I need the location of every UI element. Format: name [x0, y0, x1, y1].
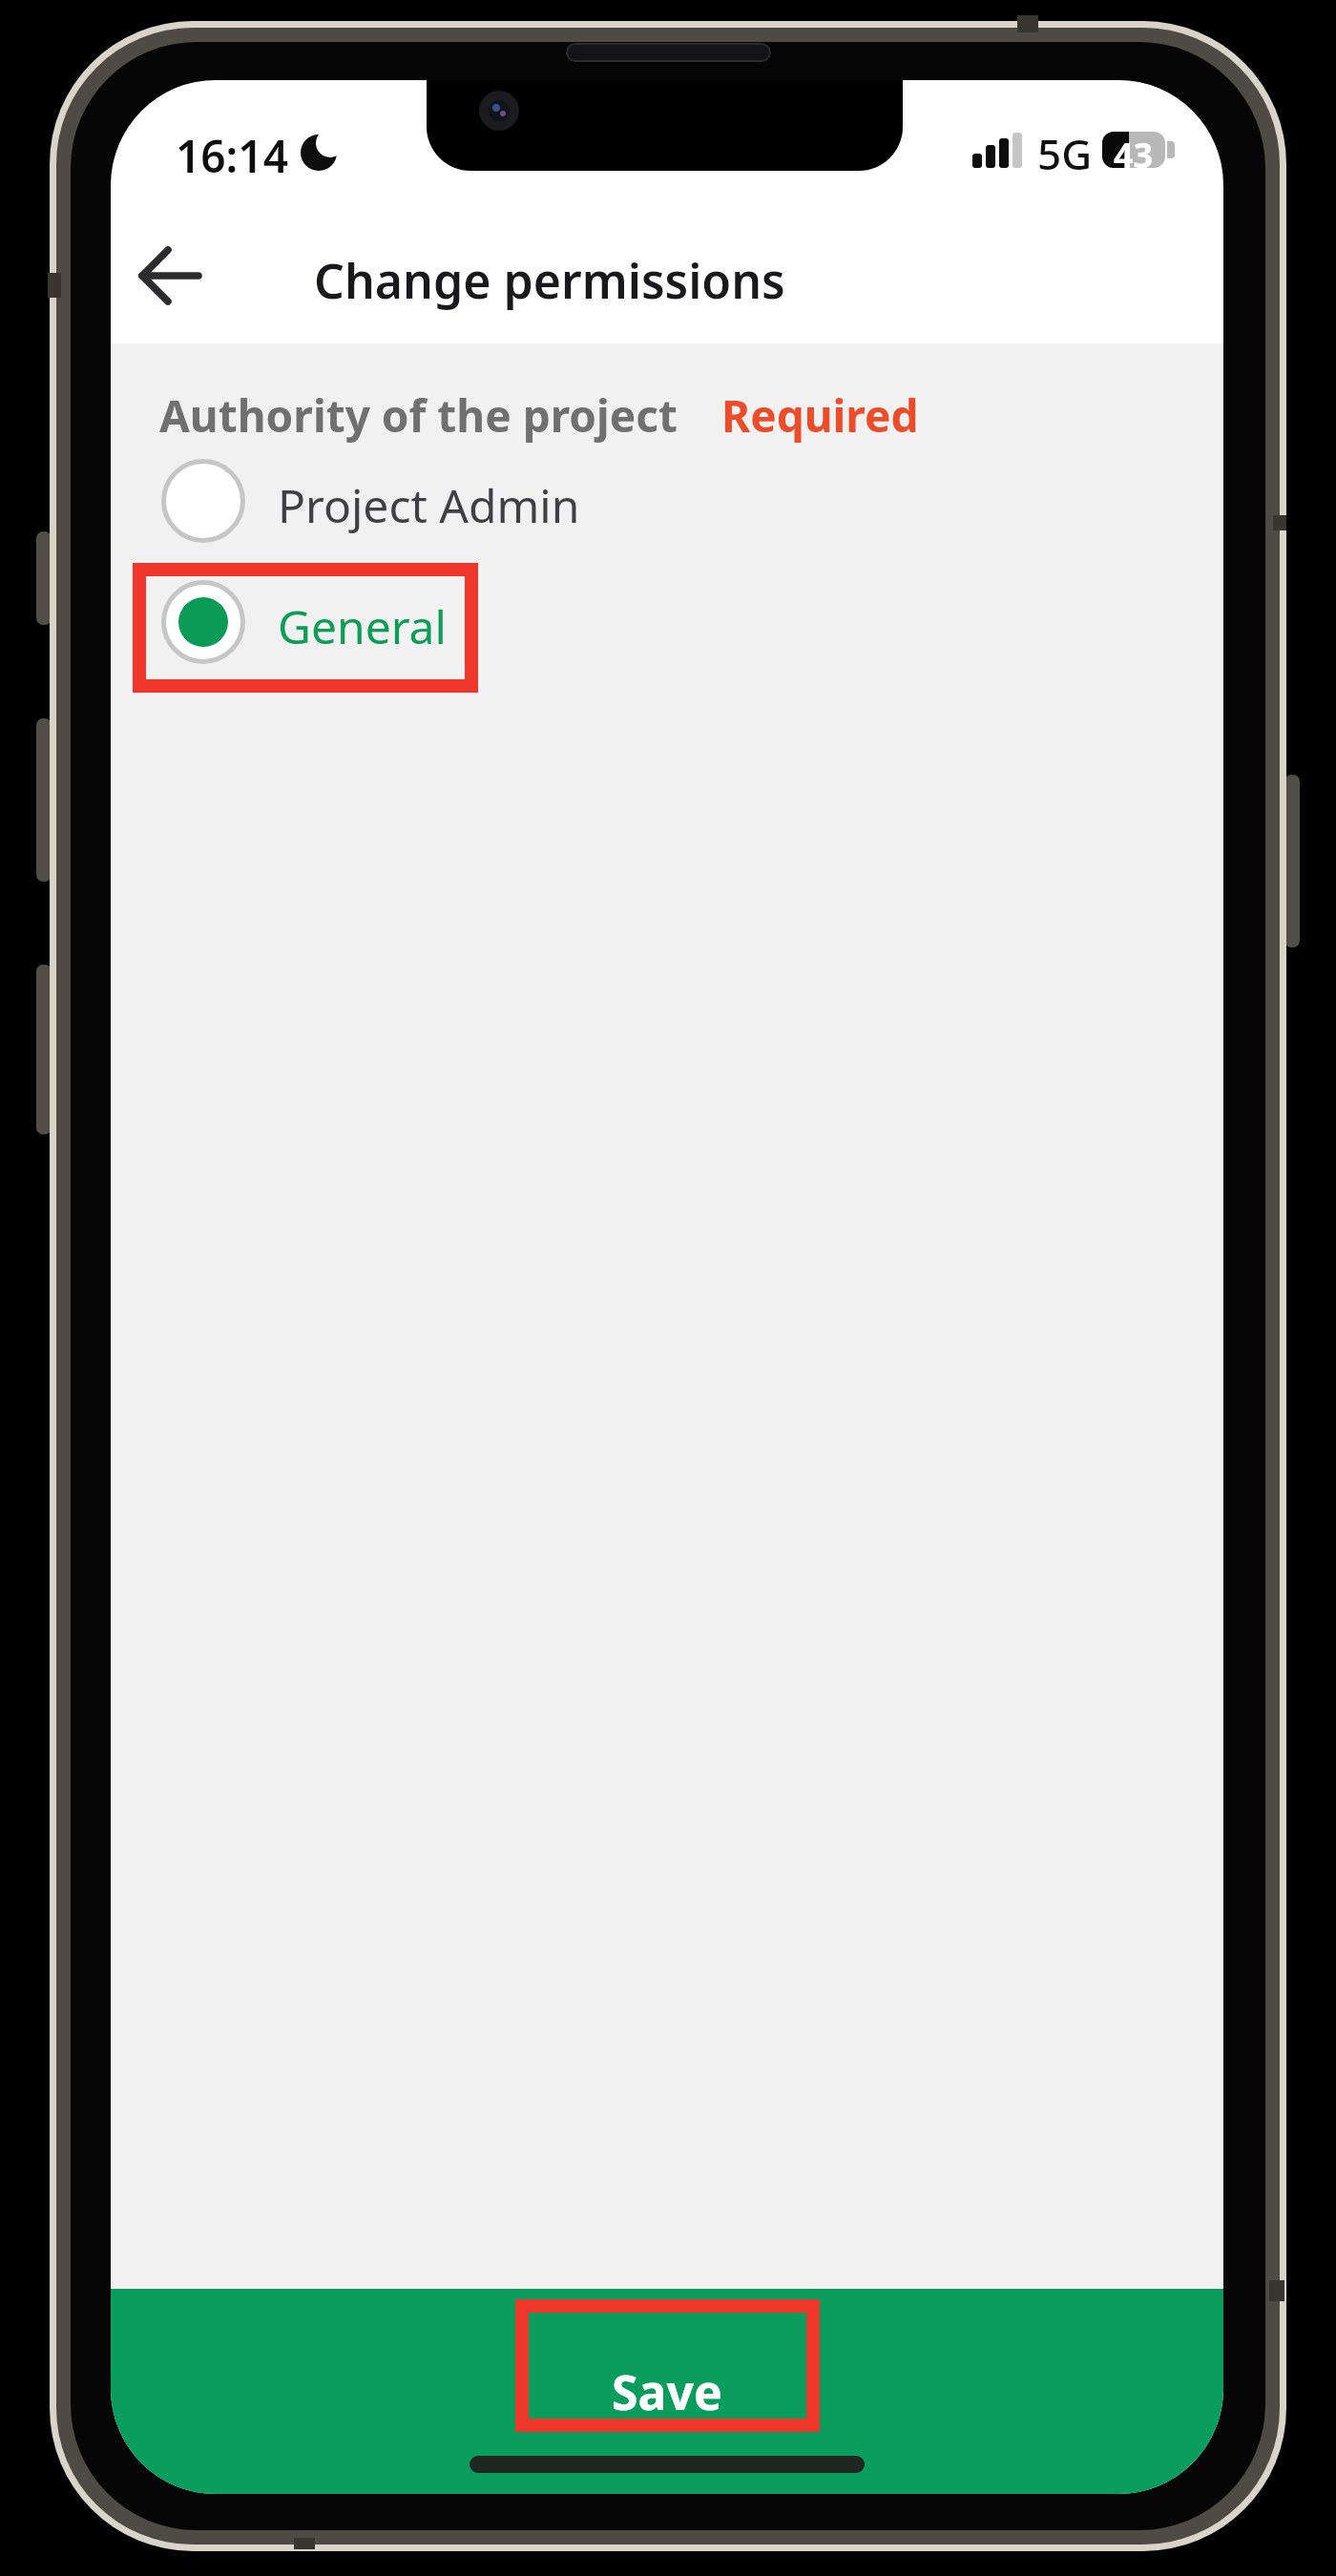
button[interactable]	[130, 233, 216, 319]
staticText: Required	[721, 385, 919, 446]
staticText: Save	[612, 2359, 722, 2424]
staticText: Authority of the project	[159, 385, 678, 446]
staticText: 16:14	[176, 126, 288, 186]
button[interactable]: Save	[111, 2289, 1223, 2494]
staticText: General	[278, 595, 447, 657]
staticText: 5G	[1037, 125, 1093, 182]
staticText: Change permissions	[314, 248, 785, 313]
staticText: Project Admin	[278, 474, 580, 536]
button[interactable]: Project Admin	[149, 452, 721, 550]
staticText: 43	[1114, 132, 1154, 168]
button[interactable]: General	[149, 573, 721, 671]
